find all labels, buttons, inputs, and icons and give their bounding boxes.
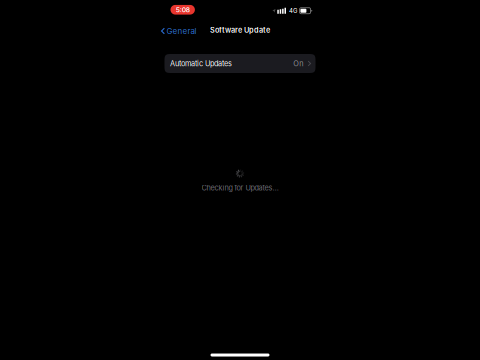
staticText: General: [166, 26, 196, 36]
staticText: On: [293, 59, 303, 68]
staticText: 5:08: [176, 6, 190, 14]
button[interactable]: General: [161, 22, 196, 38]
staticText: 4G: [289, 7, 297, 14]
staticText: Automatic Updates: [170, 59, 232, 68]
button[interactable]: Automatic Updates: [164, 54, 315, 73]
staticText: Software Update: [210, 26, 270, 34]
staticText: Checking for Updates…: [201, 183, 278, 192]
